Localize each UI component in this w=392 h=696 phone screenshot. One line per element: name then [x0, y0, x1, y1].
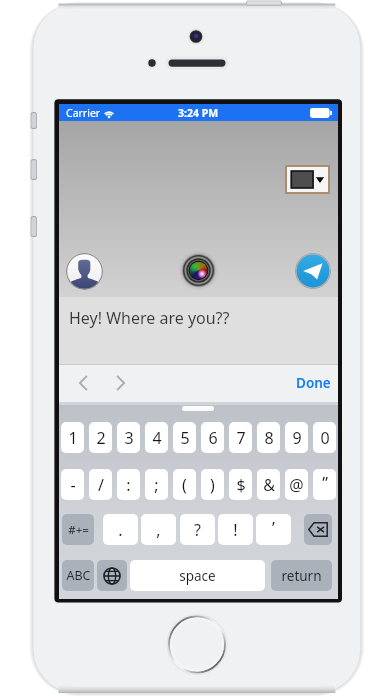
- staticText: (: [182, 474, 187, 496]
- staticText: ABC: [66, 567, 91, 584]
- staticText: .: [118, 519, 123, 541]
- button[interactable]: ”: [313, 469, 336, 500]
- button[interactable]: Change keyboard: [97, 560, 127, 591]
- staticText: ,: [156, 519, 161, 541]
- staticText: 4: [152, 427, 162, 449]
- button[interactable]: Camera: [181, 253, 216, 288]
- button[interactable]: ’: [256, 514, 291, 545]
- button[interactable]: Done: [290, 366, 337, 400]
- button[interactable]: 3: [117, 422, 140, 453]
- button[interactable]: $: [229, 469, 252, 500]
- staticText: 9: [292, 427, 302, 449]
- button[interactable]: 4: [145, 422, 168, 453]
- staticText: Done: [296, 374, 331, 392]
- button[interactable]: Colour picker: [287, 167, 328, 192]
- staticText: #+=: [68, 522, 89, 538]
- button[interactable]: 0: [313, 422, 336, 453]
- button[interactable]: :: [117, 469, 140, 500]
- staticText: 6: [208, 427, 218, 449]
- staticText: 8: [264, 427, 274, 449]
- button[interactable]: 7: [229, 422, 252, 453]
- staticText: 3: [124, 427, 134, 449]
- staticText: Hey! Where are you??: [69, 307, 230, 329]
- staticText: @: [289, 474, 304, 496]
- button[interactable]: -: [61, 469, 84, 500]
- button[interactable]: Previous field: [67, 364, 99, 402]
- button[interactable]: return: [271, 560, 332, 591]
- staticText: :: [126, 474, 131, 496]
- button[interactable]: ?: [180, 514, 215, 545]
- button[interactable]: 8: [257, 422, 280, 453]
- button[interactable]: 2: [89, 422, 112, 453]
- staticText: -: [70, 474, 76, 496]
- button[interactable]: 9: [285, 422, 308, 453]
- staticText: 7: [236, 427, 246, 449]
- staticText: !: [233, 519, 238, 541]
- staticText: 0: [320, 427, 330, 449]
- button[interactable]: space: [130, 560, 265, 591]
- button[interactable]: Backspace: [304, 514, 332, 545]
- staticText: 2: [96, 427, 106, 449]
- staticText: 1: [68, 427, 78, 449]
- staticText: /: [98, 474, 104, 496]
- staticText: ;: [154, 474, 159, 496]
- staticText: space: [179, 567, 216, 585]
- button[interactable]: 5: [173, 422, 196, 453]
- staticText: ”: [322, 472, 328, 494]
- staticText: ?: [194, 519, 201, 541]
- button[interactable]: 6: [201, 422, 224, 453]
- button[interactable]: ,: [141, 514, 176, 545]
- staticText: ’: [272, 517, 275, 539]
- button[interactable]: 1: [61, 422, 84, 453]
- button[interactable]: [59, 297, 338, 364]
- staticText: ): [210, 474, 215, 496]
- button[interactable]: ;: [145, 469, 168, 500]
- button[interactable]: ABC: [62, 560, 94, 591]
- button[interactable]: Contact: [66, 253, 103, 290]
- button[interactable]: ): [201, 469, 224, 500]
- button[interactable]: .: [103, 514, 138, 545]
- staticText: &: [263, 474, 275, 496]
- staticText: return: [281, 567, 322, 585]
- button[interactable]: Next field: [104, 364, 136, 402]
- button[interactable]: #+=: [62, 514, 94, 545]
- button[interactable]: Send via Telegram: [295, 253, 331, 289]
- staticText: Carrier: [66, 106, 101, 120]
- staticText: $: [236, 474, 246, 496]
- staticText: 3:24 PM: [178, 106, 219, 120]
- button[interactable]: @: [285, 469, 308, 500]
- button[interactable]: !: [218, 514, 253, 545]
- button[interactable]: (: [173, 469, 196, 500]
- button[interactable]: &: [257, 469, 280, 500]
- button[interactable]: /: [89, 469, 112, 500]
- staticText: 5: [180, 427, 190, 449]
